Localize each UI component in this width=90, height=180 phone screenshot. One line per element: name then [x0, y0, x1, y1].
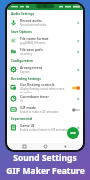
staticText: Arrangement — [20, 65, 43, 70]
staticText: Audio Settings — [11, 12, 35, 16]
button[interactable]: File name format — [7, 35, 83, 46]
staticText: Record internal audio — [20, 23, 47, 27]
button[interactable]: GIF mode — [7, 104, 83, 115]
staticText: Enable to make a GIF animation — [20, 110, 59, 114]
staticText: recording — [20, 52, 32, 56]
button[interactable]: Record audio — [7, 17, 83, 28]
staticText: Use floating controls — [20, 82, 55, 87]
button[interactable]: Record — [67, 127, 79, 139]
button[interactable]: Use floating controls — [7, 82, 83, 93]
staticText: 3s — [20, 99, 23, 103]
staticText: Experimental — [11, 117, 33, 121]
staticText: Enable surface feature in GIF animation — [20, 128, 69, 132]
staticText: File save path — [20, 47, 43, 52]
staticText: Countdown timer — [20, 94, 50, 99]
staticText: GIF mode — [20, 105, 36, 110]
button[interactable]: Countdown timer — [7, 93, 83, 104]
staticText: File name format — [20, 36, 49, 41]
staticText: GIF Maker Feature — [6, 165, 85, 177]
staticText: Sound Settings — [13, 152, 77, 164]
staticText: yyyyMMdd_HHmmss — [20, 41, 46, 45]
button[interactable]: Game UI — [7, 122, 83, 133]
button[interactable]: File save path — [7, 46, 83, 57]
staticText: Record audio — [20, 18, 42, 23]
button[interactable]: Recents — [21, 143, 28, 150]
staticText: Save Options — [11, 30, 32, 34]
staticText: Caption — [20, 70, 30, 74]
staticText: Configuration — [11, 59, 34, 63]
staticText: Display floating control when screen rec… — [20, 87, 70, 93]
staticText: Game UI — [20, 123, 35, 128]
staticText: Recording Settings — [11, 77, 41, 81]
button[interactable]: Back — [62, 143, 69, 150]
button[interactable]: Arrangement — [7, 64, 83, 75]
button[interactable]: Home — [42, 143, 49, 150]
